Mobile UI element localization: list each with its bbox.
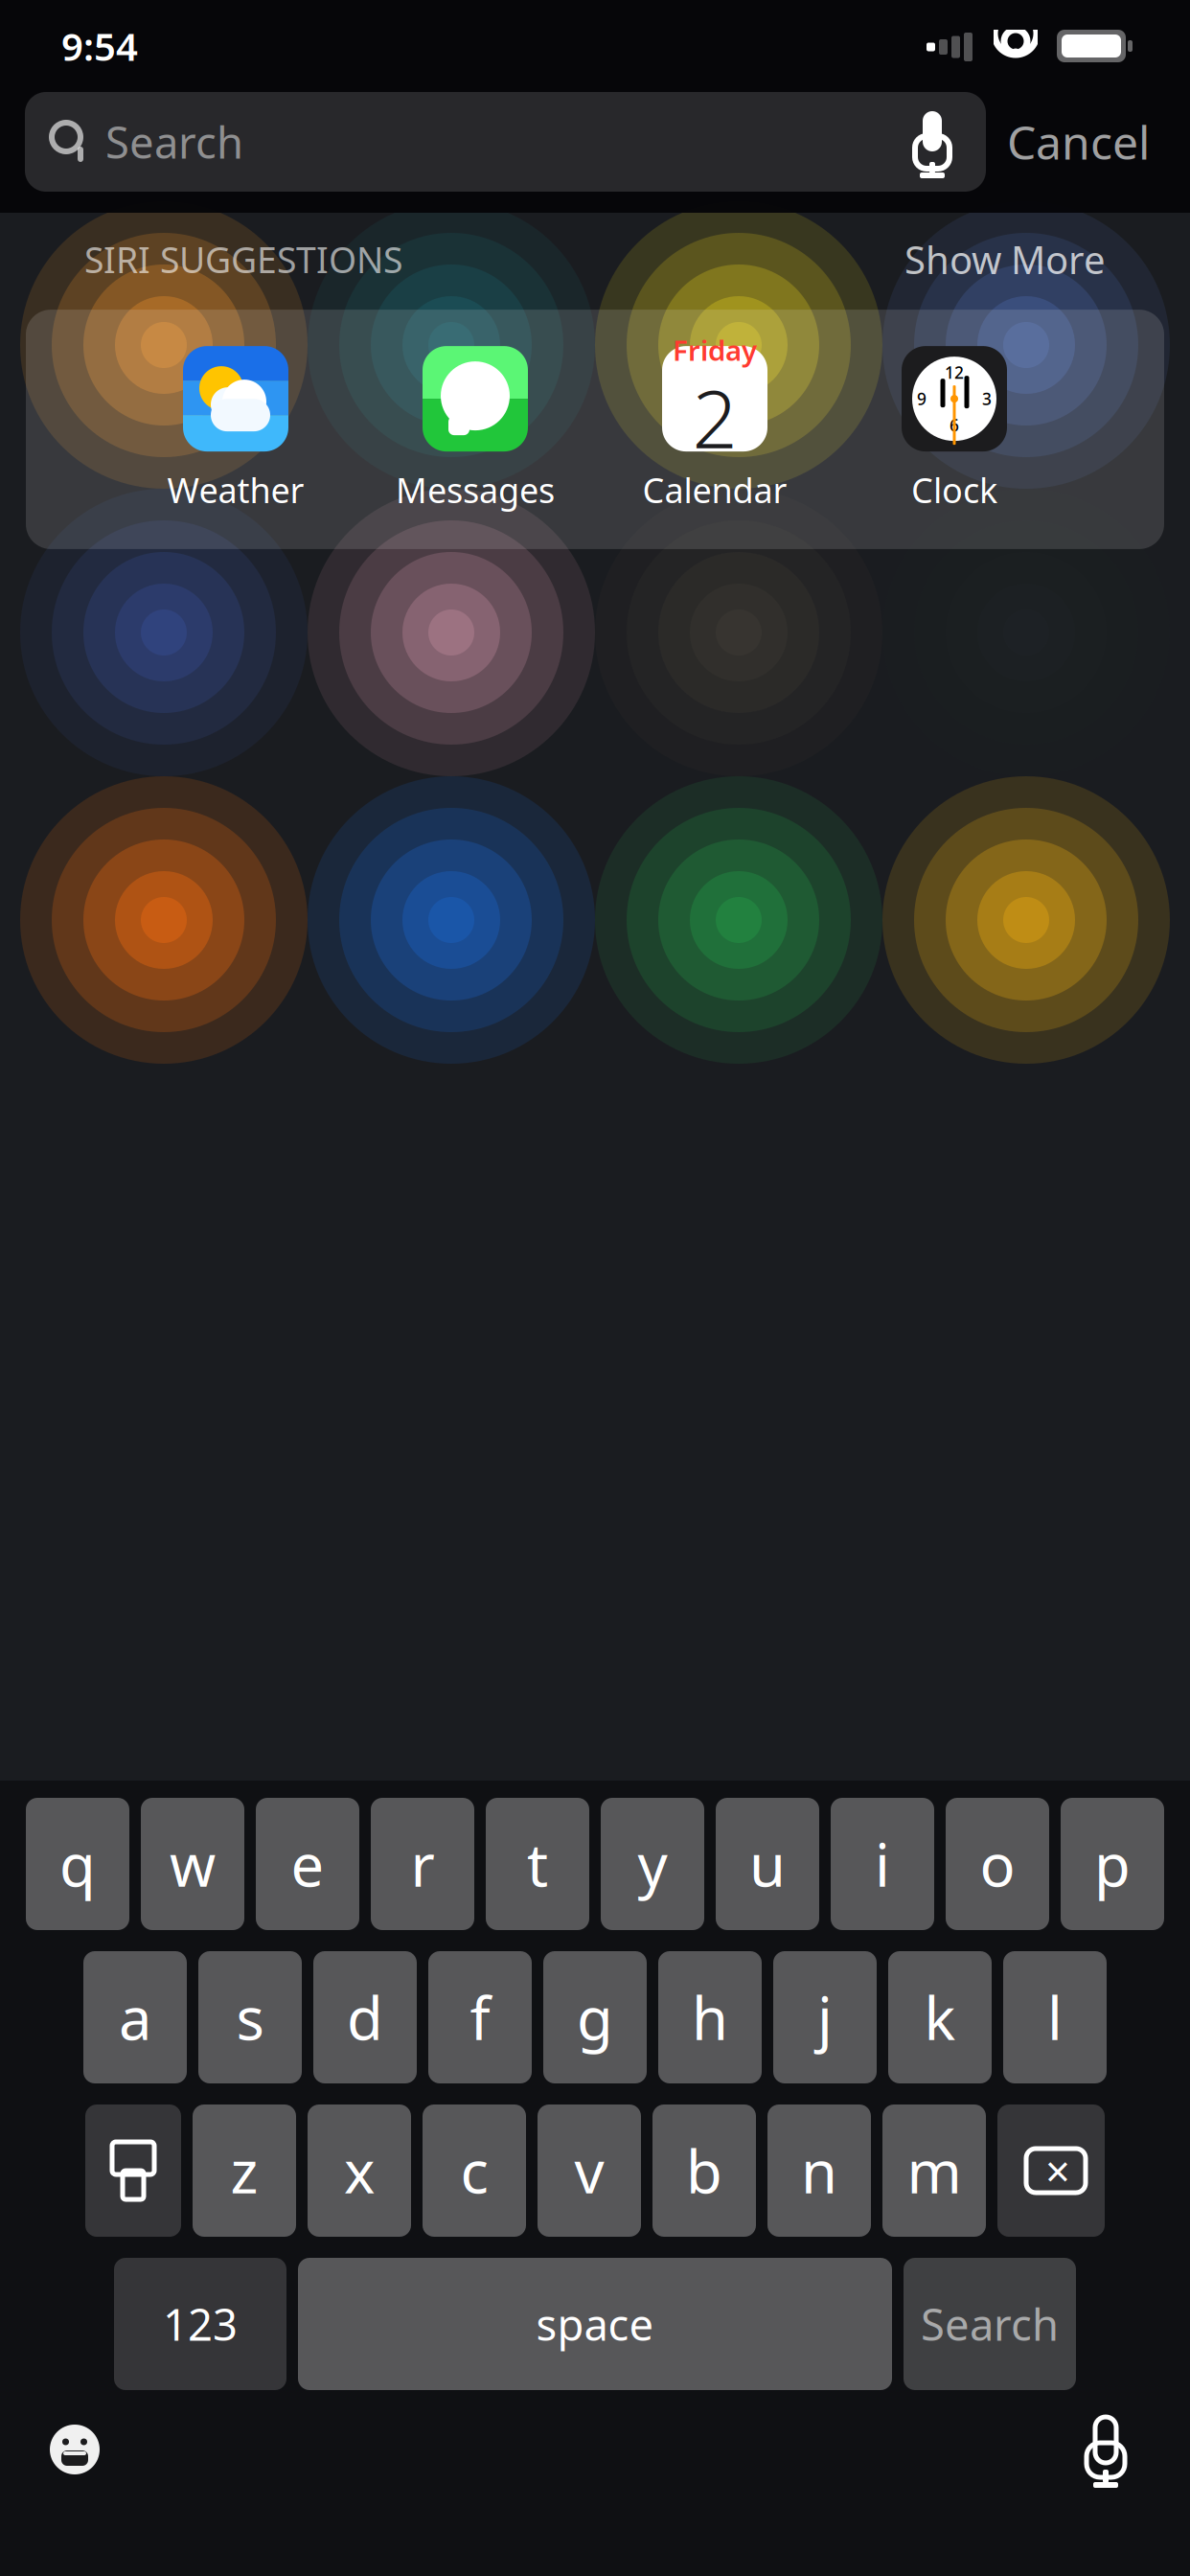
button[interactable]: Dictation xyxy=(1060,2403,1152,2495)
staticText: e xyxy=(291,1825,324,1903)
staticText: v xyxy=(574,2132,604,2210)
staticText: d xyxy=(347,1978,383,2056)
button[interactable]: space xyxy=(298,2258,892,2390)
button[interactable]: a xyxy=(83,1951,187,2083)
staticText: Calendar xyxy=(642,467,787,513)
staticText: 6 xyxy=(950,414,959,436)
staticText: i xyxy=(875,1825,890,1903)
button[interactable]: Friday xyxy=(595,336,835,522)
staticText: Clock xyxy=(911,467,997,513)
staticText: Search xyxy=(105,113,243,171)
button[interactable]: Show More xyxy=(904,234,1190,285)
button[interactable]: c xyxy=(423,2104,526,2237)
staticText: x xyxy=(344,2132,375,2210)
button[interactable]: m xyxy=(882,2104,986,2237)
button[interactable]: Weather xyxy=(116,336,355,522)
button[interactable]: s xyxy=(198,1951,302,2083)
staticText: Show More xyxy=(904,234,1106,285)
staticText: g xyxy=(577,1978,613,2056)
button[interactable]: Delete xyxy=(997,2104,1105,2237)
staticText: Search xyxy=(921,2295,1059,2353)
button[interactable]: 12 xyxy=(835,336,1074,522)
staticText: c xyxy=(460,2132,488,2210)
button[interactable]: g xyxy=(543,1951,647,2083)
staticText: space xyxy=(536,2295,654,2353)
staticText: n xyxy=(801,2132,837,2210)
staticText: u xyxy=(749,1825,786,1903)
button[interactable]: e xyxy=(256,1798,359,1930)
staticText: 9:54 xyxy=(61,21,138,71)
button[interactable]: z xyxy=(193,2104,296,2237)
button[interactable]: i xyxy=(831,1798,934,1930)
staticText: 9 xyxy=(917,388,927,410)
staticText: a xyxy=(119,1978,151,2056)
staticText: s xyxy=(236,1978,264,2056)
button[interactable]: x xyxy=(308,2104,411,2237)
staticText: m xyxy=(907,2132,961,2210)
staticText: 2 xyxy=(692,365,737,470)
staticText: r xyxy=(411,1825,435,1903)
staticText: Messages xyxy=(396,467,555,513)
button[interactable]: k xyxy=(888,1951,992,2083)
staticText: o xyxy=(980,1825,1015,1903)
button[interactable]: f xyxy=(428,1951,532,2083)
staticText: Cancel xyxy=(1007,111,1150,172)
staticText: b xyxy=(686,2132,722,2210)
button[interactable]: Shift xyxy=(85,2104,181,2237)
button[interactable]: Messages xyxy=(355,336,595,522)
button[interactable]: u xyxy=(716,1798,819,1930)
staticText: 3 xyxy=(982,388,992,410)
button[interactable]: w xyxy=(141,1798,244,1930)
staticText: y xyxy=(638,1825,667,1903)
button[interactable]: b xyxy=(652,2104,756,2237)
button[interactable]: h xyxy=(658,1951,762,2083)
button[interactable]: Search xyxy=(904,2258,1076,2390)
staticText: Friday xyxy=(673,331,757,369)
button[interactable]: d xyxy=(313,1951,417,2083)
staticText: h xyxy=(692,1978,728,2056)
staticText: Weather xyxy=(167,467,304,513)
button[interactable]: r xyxy=(371,1798,474,1930)
button[interactable]: 123 xyxy=(114,2258,286,2390)
staticText: 123 xyxy=(163,2295,238,2353)
staticText: SIRI SUGGESTIONS xyxy=(84,236,402,283)
staticText: 12 xyxy=(945,361,964,383)
staticText: l xyxy=(1047,1978,1063,2056)
button[interactable]: l xyxy=(1003,1951,1107,2083)
staticText: p xyxy=(1094,1825,1131,1903)
staticText: k xyxy=(924,1978,956,2056)
button[interactable]: n xyxy=(767,2104,871,2237)
button[interactable]: v xyxy=(538,2104,641,2237)
staticText: × xyxy=(1045,2142,1070,2199)
button[interactable]: Emoji xyxy=(29,2403,121,2495)
button[interactable]: p xyxy=(1061,1798,1164,1930)
staticText: t xyxy=(527,1825,548,1903)
button[interactable]: t xyxy=(486,1798,589,1930)
button[interactable]: o xyxy=(946,1798,1049,1930)
staticText: z xyxy=(230,2132,258,2210)
button[interactable]: j xyxy=(773,1951,877,2083)
button[interactable]: y xyxy=(601,1798,704,1930)
staticText: f xyxy=(470,1978,490,2056)
staticText: j xyxy=(817,1978,833,2056)
button[interactable]: q xyxy=(26,1798,129,1930)
staticText: q xyxy=(59,1825,96,1903)
button[interactable]: Cancel xyxy=(986,92,1171,192)
staticText: w xyxy=(170,1825,216,1903)
